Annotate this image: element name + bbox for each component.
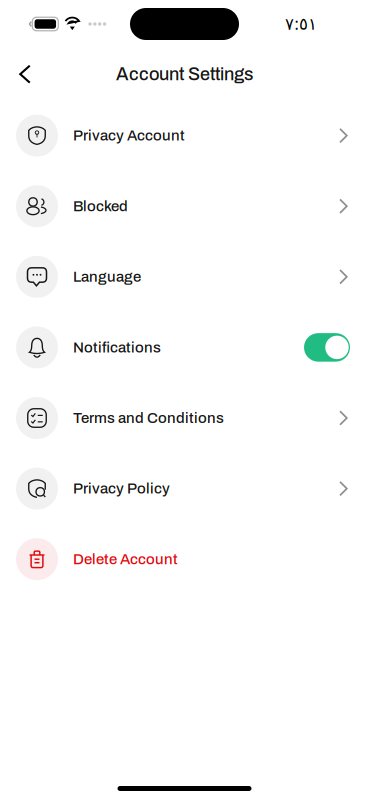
staticText: Delete Account [73, 551, 178, 567]
button[interactable]: Notifications [0, 312, 369, 383]
button[interactable]: Privacy Policy [0, 453, 369, 524]
staticText: Account Settings [116, 64, 253, 84]
staticText: Notifications [73, 339, 161, 355]
staticText: Blocked [73, 198, 128, 214]
button[interactable]: Terms and Conditions [0, 383, 369, 453]
staticText: Language [73, 269, 141, 285]
staticText: ٧:٥١ [285, 14, 317, 34]
button[interactable]: Back [6, 55, 44, 93]
button[interactable]: Privacy Account [0, 100, 369, 171]
staticText: Privacy Account [73, 127, 185, 144]
staticText: Terms and Conditions [73, 410, 224, 426]
staticText: Privacy Policy [73, 480, 170, 497]
button[interactable]: Blocked [0, 171, 369, 241]
button[interactable]: Language [0, 241, 369, 312]
button[interactable]: Delete Account [0, 524, 369, 594]
